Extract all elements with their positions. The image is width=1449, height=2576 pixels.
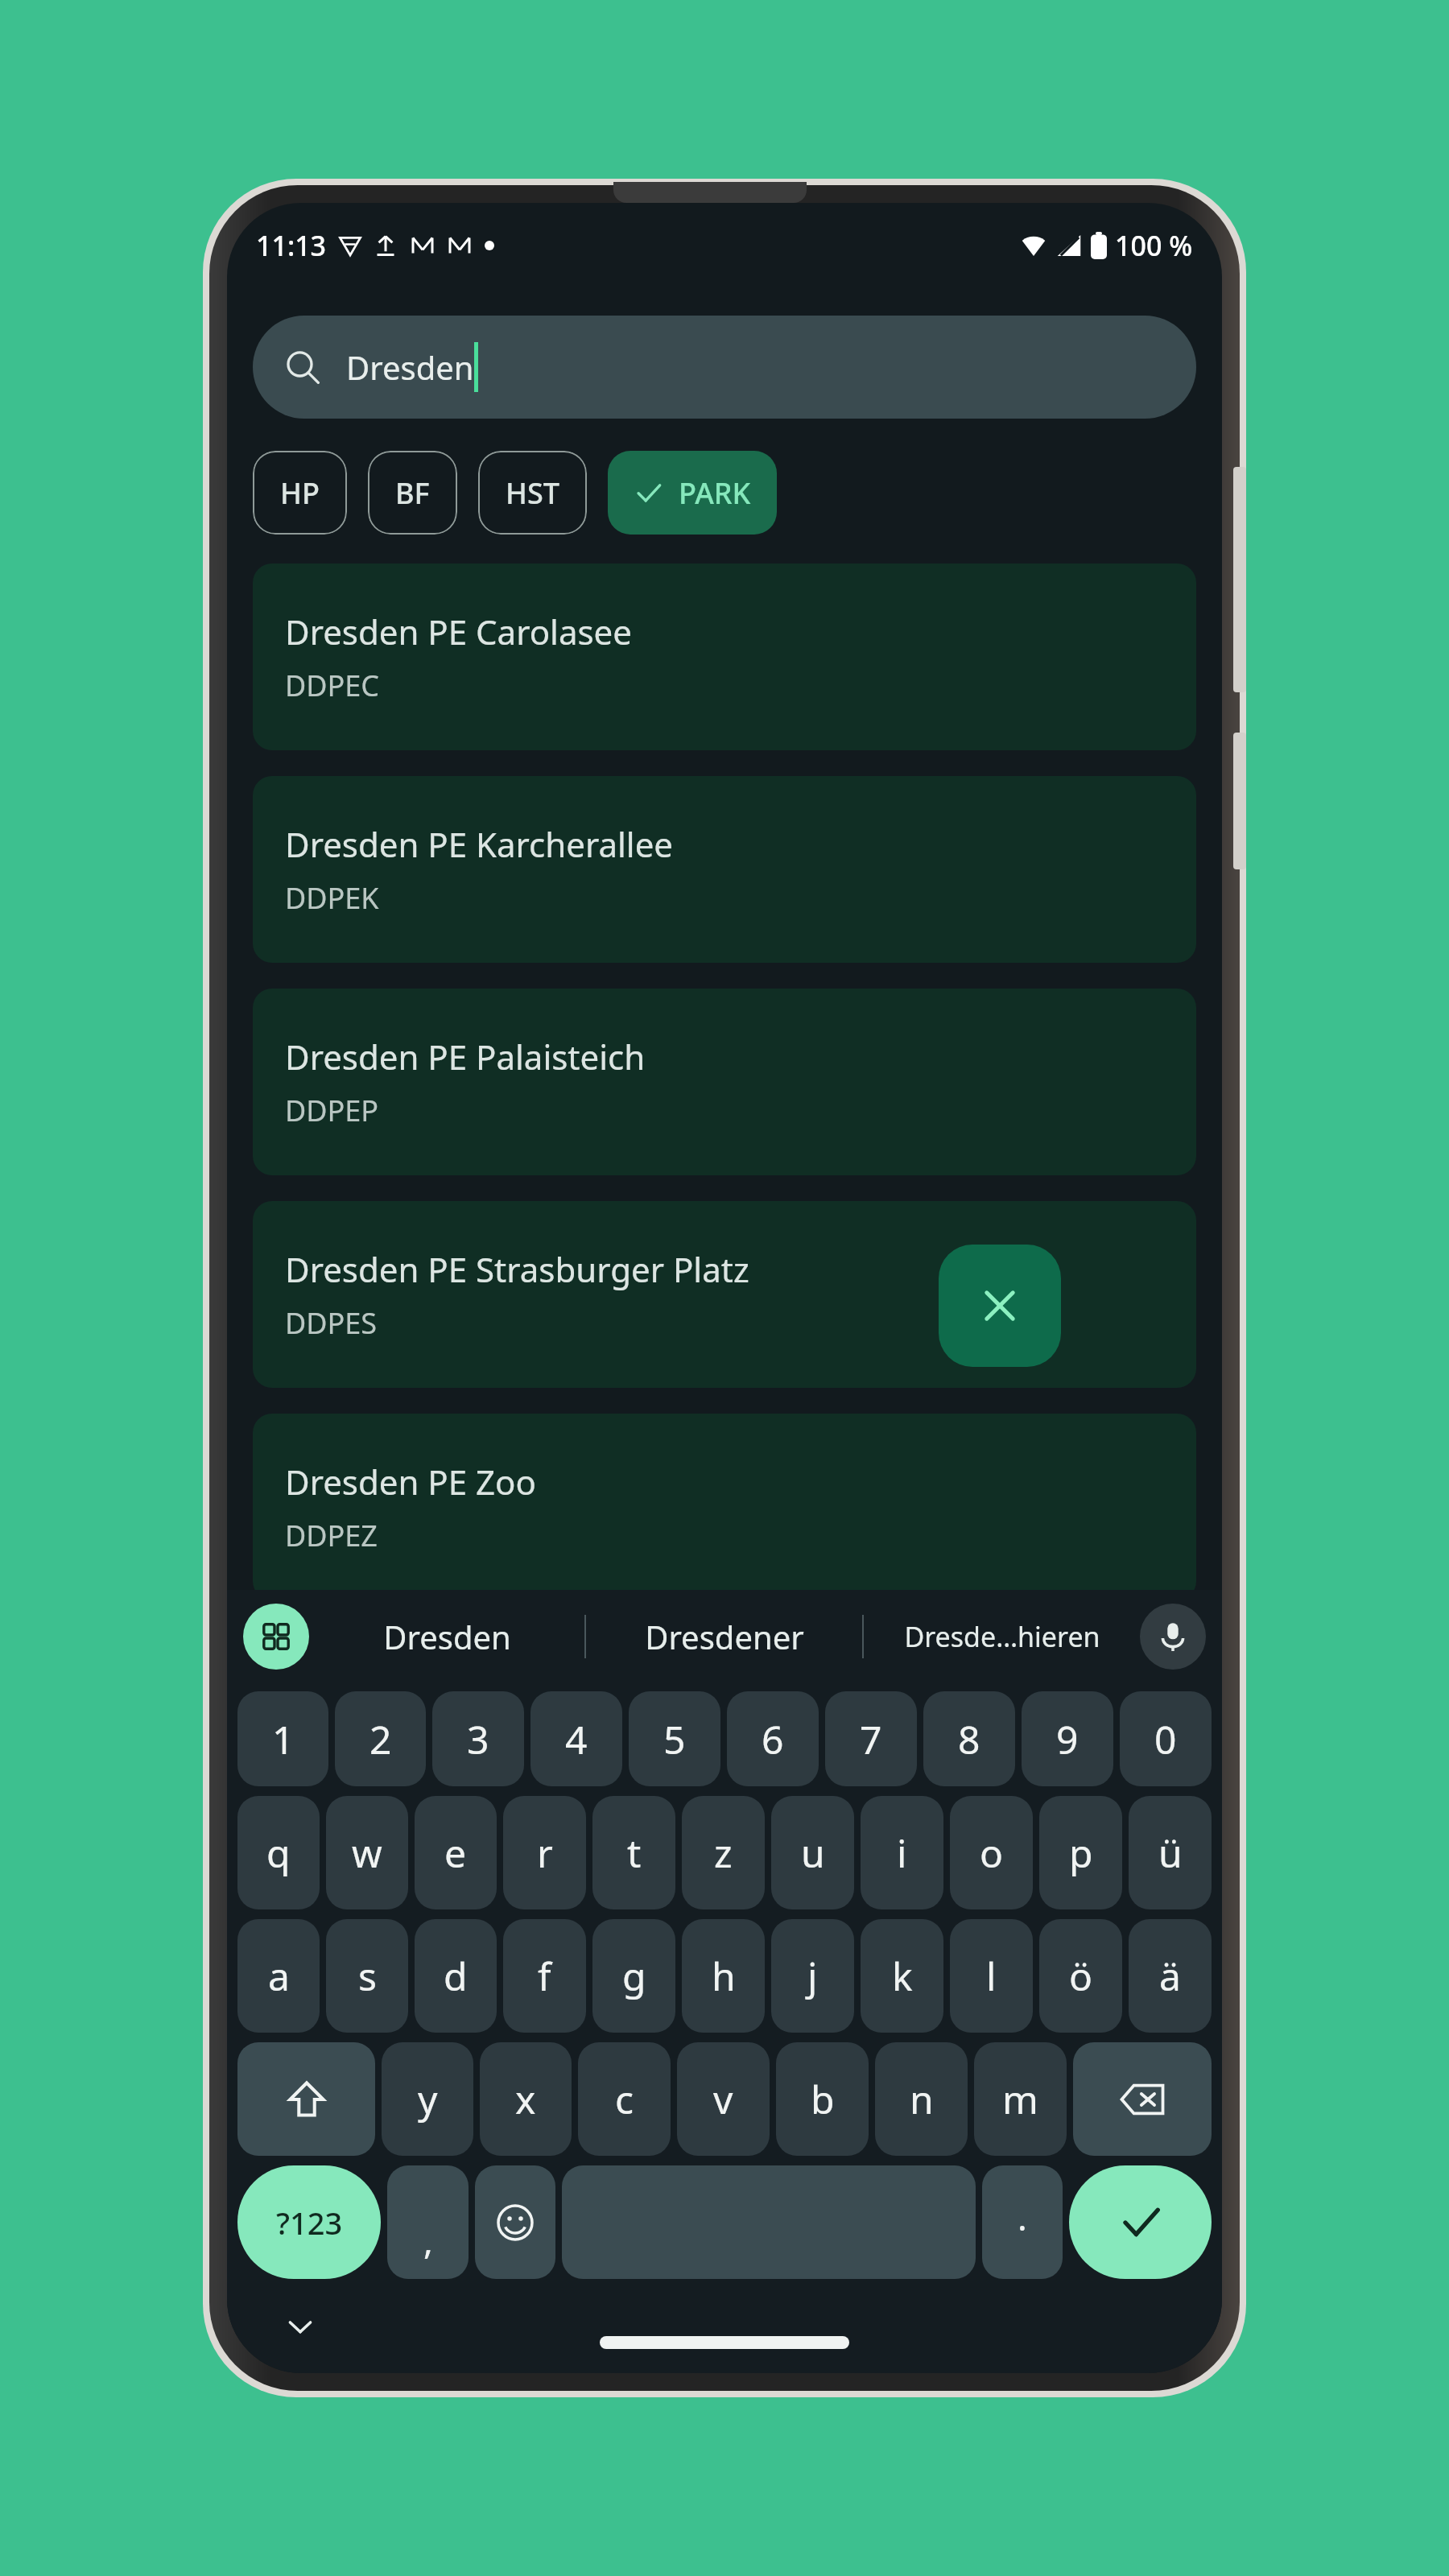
- staticText: 3: [467, 1713, 489, 1765]
- button[interactable]: c: [578, 2042, 671, 2156]
- button[interactable]: r: [503, 1796, 586, 1909]
- button[interactable]: k: [861, 1919, 943, 2033]
- staticText: f: [538, 1950, 551, 2002]
- staticText: d: [444, 1950, 468, 2002]
- button[interactable]: ö: [1039, 1919, 1122, 2033]
- button[interactable]: m: [974, 2042, 1067, 2156]
- staticText: DDPEZ: [285, 1516, 378, 1555]
- button[interactable]: Hide keyboard: [272, 2298, 328, 2355]
- staticText: t: [627, 1827, 642, 1879]
- staticText: s: [358, 1950, 377, 2002]
- button[interactable]: Dresdener: [586, 1590, 862, 1683]
- button[interactable]: 7: [825, 1691, 917, 1786]
- staticText: Dresden PE Karcherallee: [285, 821, 674, 867]
- staticText: e: [444, 1827, 467, 1879]
- staticText: v: [713, 2073, 733, 2125]
- button[interactable]: Dresden: [253, 316, 1196, 419]
- button[interactable]: 5: [629, 1691, 720, 1786]
- button[interactable]: Shift: [237, 2042, 375, 2156]
- button[interactable]: Space: [562, 2165, 976, 2279]
- button[interactable]: o: [950, 1796, 1033, 1909]
- button[interactable]: 4: [530, 1691, 622, 1786]
- button[interactable]: Clear search: [939, 1245, 1061, 1367]
- button[interactable]: i: [861, 1796, 943, 1909]
- button[interactable]: u: [771, 1796, 854, 1909]
- staticText: r: [537, 1827, 553, 1879]
- staticText: 5: [663, 1713, 686, 1765]
- staticText: a: [268, 1950, 290, 2002]
- staticText: w: [352, 1827, 382, 1879]
- button[interactable]: w: [326, 1796, 408, 1909]
- button[interactable]: 2: [335, 1691, 426, 1786]
- staticText: Dresden PE Carolasee: [285, 609, 632, 654]
- staticText: HP: [280, 473, 320, 513]
- staticText: ,: [423, 2216, 433, 2264]
- button[interactable]: y: [382, 2042, 473, 2156]
- button[interactable]: q: [237, 1796, 320, 1909]
- button[interactable]: Emoji: [475, 2165, 555, 2279]
- staticText: PARK: [679, 473, 751, 513]
- button[interactable]: 0: [1120, 1691, 1212, 1786]
- staticText: 7: [860, 1713, 882, 1765]
- button[interactable]: l: [950, 1919, 1033, 2033]
- button[interactable]: s: [326, 1919, 408, 2033]
- staticText: DDPEP: [285, 1091, 379, 1130]
- button[interactable]: b: [776, 2042, 869, 2156]
- button[interactable]: e: [415, 1796, 497, 1909]
- staticText: ü: [1158, 1827, 1183, 1879]
- staticText: k: [892, 1950, 913, 2002]
- button[interactable]: ä: [1129, 1919, 1212, 2033]
- staticText: 6: [762, 1713, 784, 1765]
- button[interactable]: z: [682, 1796, 765, 1909]
- button[interactable]: g: [592, 1919, 675, 2033]
- staticText: 11:13: [256, 227, 327, 264]
- button[interactable]: a: [237, 1919, 320, 2033]
- button[interactable]: Dresden: [309, 1590, 584, 1683]
- button[interactable]: 3: [432, 1691, 524, 1786]
- button[interactable]: d: [415, 1919, 497, 2033]
- button[interactable]: Enter: [1069, 2165, 1212, 2279]
- staticText: HST: [506, 473, 559, 513]
- staticText: Dresden: [346, 345, 474, 389]
- button[interactable]: 1: [237, 1691, 328, 1786]
- button[interactable]: Dresden PE Carolasee: [253, 563, 1196, 750]
- staticText: y: [418, 2073, 438, 2125]
- staticText: i: [897, 1827, 907, 1879]
- button[interactable]: Dresden PE Zoo: [253, 1414, 1196, 1600]
- staticText: 0: [1154, 1713, 1177, 1765]
- button[interactable]: j: [771, 1919, 854, 2033]
- button[interactable]: 8: [923, 1691, 1015, 1786]
- button[interactable]: n: [875, 2042, 968, 2156]
- button[interactable]: Dresden PE Karcherallee: [253, 776, 1196, 963]
- staticText: l: [986, 1950, 997, 2002]
- button[interactable]: x: [480, 2042, 572, 2156]
- button[interactable]: 9: [1022, 1691, 1113, 1786]
- staticText: Dresde…hieren: [904, 1618, 1100, 1655]
- staticText: Dresden PE Zoo: [285, 1459, 536, 1505]
- button[interactable]: ü: [1129, 1796, 1212, 1909]
- button[interactable]: Dresden PE Palaisteich: [253, 989, 1196, 1175]
- button[interactable]: v: [677, 2042, 770, 2156]
- button[interactable]: f: [503, 1919, 586, 2033]
- staticText: p: [1069, 1827, 1093, 1879]
- button[interactable]: BF: [368, 451, 457, 535]
- staticText: ä: [1159, 1950, 1181, 2002]
- button[interactable]: h: [682, 1919, 765, 2033]
- button[interactable]: 6: [727, 1691, 819, 1786]
- staticText: z: [714, 1827, 733, 1879]
- button[interactable]: Keyboard options: [243, 1604, 309, 1670]
- button[interactable]: Comma: [387, 2165, 469, 2279]
- staticText: 2: [369, 1713, 392, 1765]
- button[interactable]: t: [592, 1796, 675, 1909]
- button[interactable]: PARK: [608, 451, 777, 535]
- button[interactable]: Backspace: [1073, 2042, 1212, 2156]
- button[interactable]: Voice input: [1140, 1604, 1206, 1670]
- button[interactable]: p: [1039, 1796, 1122, 1909]
- button[interactable]: HST: [478, 451, 587, 535]
- button[interactable]: Period: [982, 2165, 1063, 2279]
- button[interactable]: Dresde…hieren: [864, 1590, 1140, 1683]
- button[interactable]: Dresden PE Strasburger Platz: [253, 1201, 1196, 1388]
- button[interactable]: ?123: [237, 2165, 381, 2279]
- staticText: DDPEK: [285, 878, 379, 918]
- button[interactable]: HP: [253, 451, 347, 535]
